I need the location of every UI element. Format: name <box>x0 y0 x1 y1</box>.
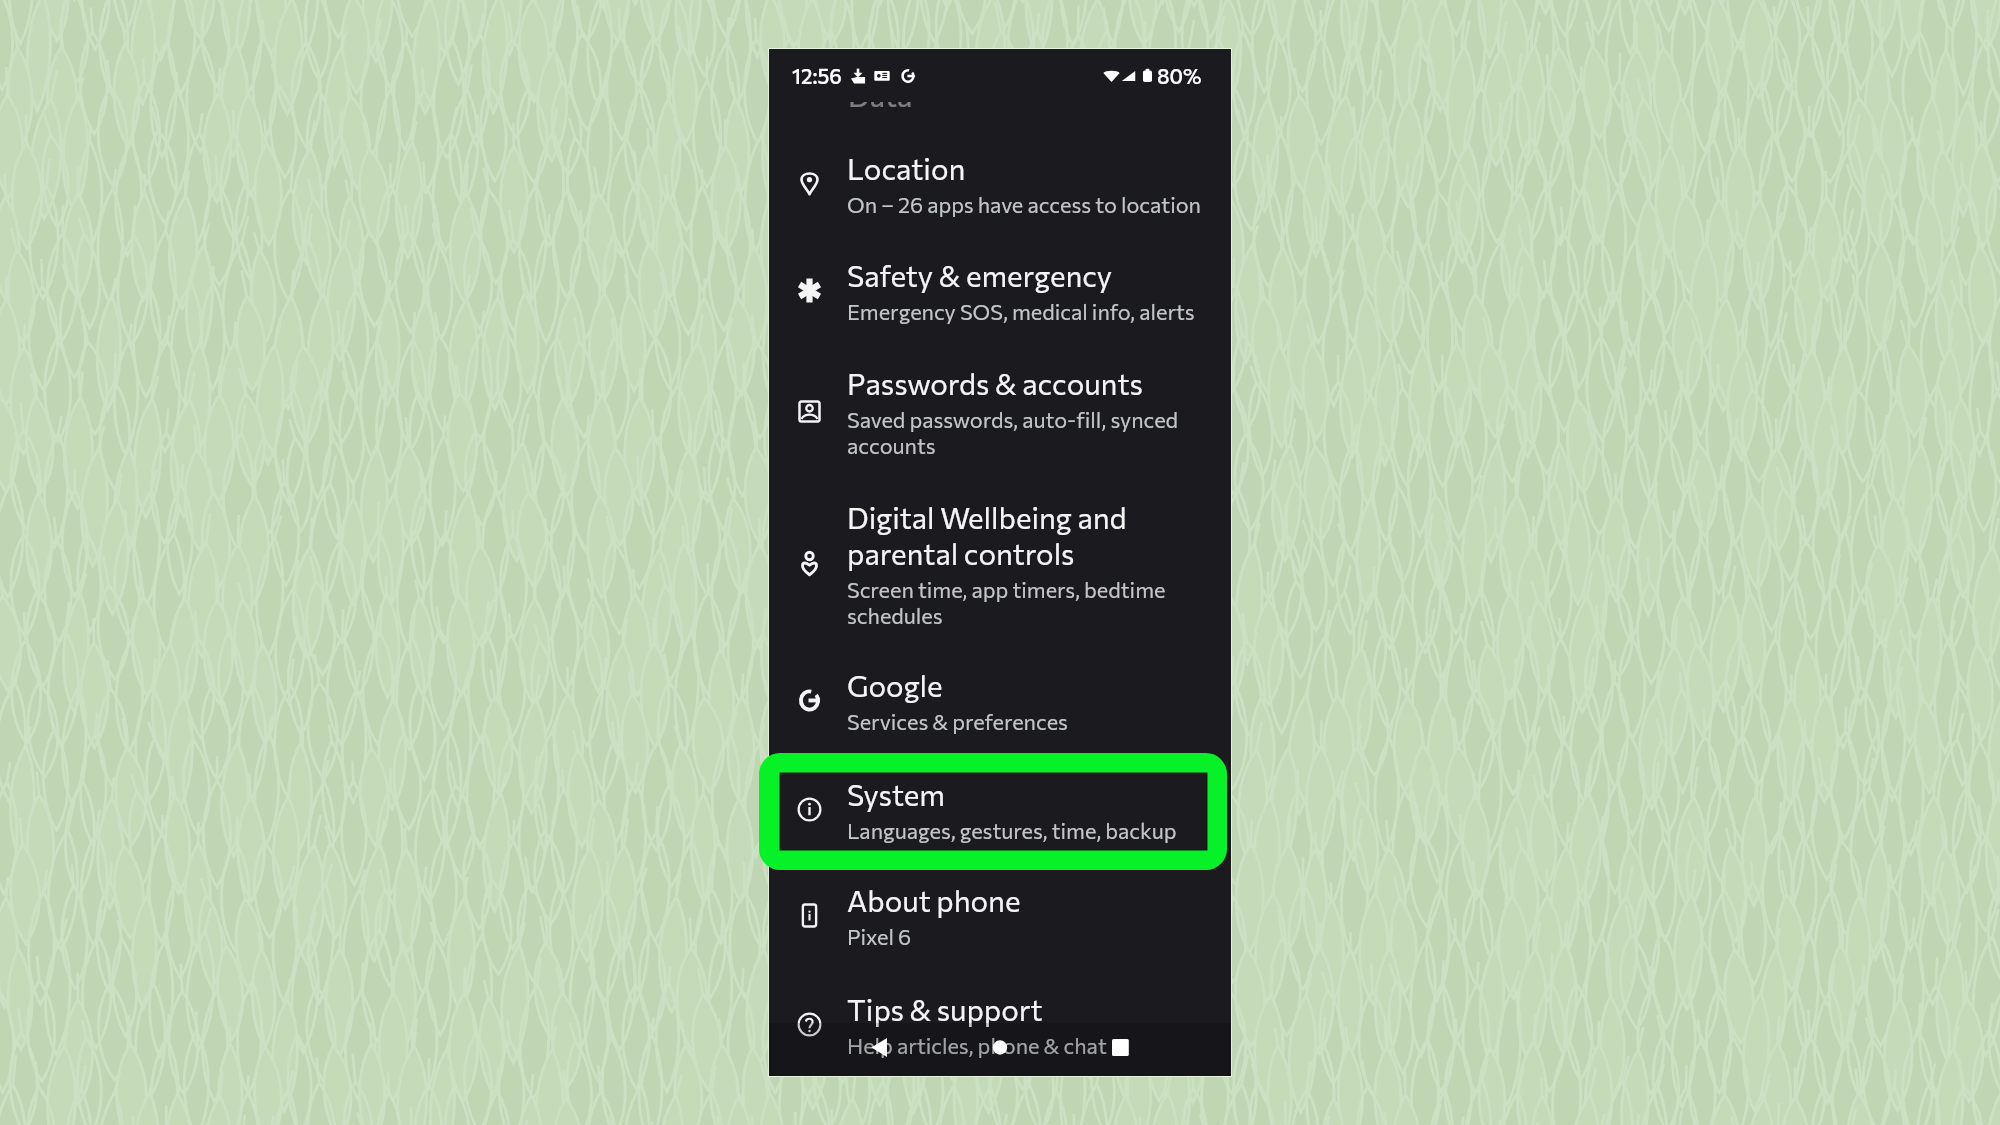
staticText: Digital Wellbeing and parental controls <box>847 499 1127 571</box>
staticText: Services & preferences <box>847 708 1068 734</box>
button[interactable]: Tips & support <box>769 970 1231 1076</box>
staticText: Screen time, app timers, bedtime schedul… <box>847 576 1166 628</box>
button[interactable]: Google <box>769 646 1231 754</box>
staticText: Location <box>847 150 966 186</box>
staticText: Emergency SOS, medical info, alerts <box>847 298 1195 324</box>
staticText: Help articles, phone & chat <box>847 1032 1107 1058</box>
staticText: Tips & support <box>847 991 1043 1027</box>
button[interactable]: System <box>769 755 1231 863</box>
staticText: Safety & emergency <box>847 257 1112 293</box>
staticText: 12:56 <box>792 63 842 88</box>
staticText: On – 26 apps have access to location <box>847 191 1201 217</box>
staticText: Languages, gestures, time, backup <box>847 817 1177 843</box>
button[interactable]: About phone <box>769 861 1231 969</box>
button[interactable]: Back <box>853 1023 905 1076</box>
staticText: Google <box>847 667 943 703</box>
staticText: Pixel 6 <box>847 923 912 949</box>
staticText: About phone <box>847 882 1021 918</box>
staticText: Passwords & accounts <box>847 365 1143 401</box>
button[interactable]: Digital Wellbeing and parental controls <box>769 478 1231 648</box>
button[interactable]: Location <box>769 129 1231 237</box>
staticText: System <box>847 776 945 812</box>
button[interactable]: Home <box>974 1023 1026 1076</box>
staticText: Data <box>848 77 913 113</box>
staticText: 80% <box>1157 63 1202 88</box>
button[interactable]: Passwords & accounts <box>769 344 1231 478</box>
button[interactable]: Recent apps <box>1094 1023 1146 1076</box>
staticText: Saved passwords, auto-fill, synced accou… <box>847 406 1179 458</box>
button[interactable]: Safety & emergency <box>769 236 1231 344</box>
